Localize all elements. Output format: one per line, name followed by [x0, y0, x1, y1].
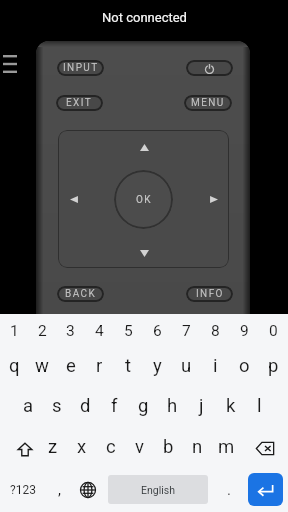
button[interactable]: EXIT — [56, 95, 103, 111]
button[interactable]: Up — [134, 137, 154, 157]
staticText: w — [35, 355, 49, 377]
staticText: English — [141, 484, 175, 496]
staticText: u — [181, 355, 192, 377]
staticText: m — [218, 436, 235, 458]
button[interactable]: 8 — [201, 314, 230, 347]
button[interactable]: x — [67, 426, 96, 467]
staticText: 6 — [153, 322, 162, 340]
staticText: a — [23, 395, 34, 417]
button[interactable]: n — [183, 426, 212, 467]
button[interactable]: BACK — [57, 286, 104, 302]
staticText: . — [227, 481, 231, 499]
button[interactable]: d — [71, 385, 100, 426]
staticText: 1 — [10, 322, 19, 340]
button[interactable]: Right — [203, 189, 223, 209]
button[interactable]: MENU — [184, 95, 232, 111]
button[interactable]: English — [108, 475, 208, 504]
button[interactable]: o — [230, 347, 259, 385]
staticText: ?123 — [10, 483, 36, 497]
staticText: i — [213, 355, 218, 377]
button[interactable]: Shift — [0, 426, 39, 467]
button[interactable]: Menu — [0, 51, 20, 77]
staticText: j — [199, 395, 204, 417]
button[interactable]: . — [213, 467, 245, 512]
button[interactable]: INPUT — [57, 60, 104, 76]
staticText: EXIT — [66, 97, 93, 109]
staticText: x — [77, 436, 87, 458]
staticText: l — [257, 395, 262, 417]
staticText: 3 — [66, 322, 75, 340]
staticText: y — [153, 355, 162, 377]
button[interactable]: h — [158, 385, 187, 426]
button[interactable]: i — [201, 347, 230, 385]
staticText: n — [192, 436, 203, 458]
button[interactable]: g — [129, 385, 158, 426]
staticText: 7 — [182, 322, 191, 340]
staticText: MENU — [191, 97, 225, 109]
staticText: d — [80, 395, 91, 417]
button[interactable]: Left — [64, 189, 84, 209]
button[interactable]: 7 — [172, 314, 201, 347]
staticText: z — [48, 436, 58, 458]
staticText: v — [135, 436, 144, 458]
staticText: 2 — [38, 322, 47, 340]
button[interactable]: a — [14, 385, 42, 426]
button[interactable]: ?123 — [0, 467, 46, 512]
button[interactable]: Backspace — [241, 426, 288, 467]
button[interactable]: Power — [186, 60, 233, 76]
button[interactable]: OK — [114, 170, 173, 229]
button[interactable]: 1 — [0, 314, 28, 347]
staticText: f — [111, 395, 118, 417]
button[interactable]: m — [212, 426, 241, 467]
staticText: 5 — [124, 322, 133, 340]
staticText: INPUT — [63, 62, 99, 74]
button[interactable]: 9 — [230, 314, 259, 347]
button[interactable]: 0 — [259, 314, 288, 347]
staticText: s — [52, 395, 62, 417]
button[interactable]: u — [172, 347, 201, 385]
button[interactable]: , — [46, 467, 73, 512]
button[interactable]: INFO — [186, 286, 233, 302]
button[interactable]: s — [42, 385, 71, 426]
staticText: INFO — [196, 288, 224, 300]
button[interactable]: c — [96, 426, 125, 467]
button[interactable]: p — [259, 347, 288, 385]
button[interactable]: v — [125, 426, 154, 467]
staticText: p — [268, 355, 279, 377]
button[interactable]: f — [100, 385, 129, 426]
button[interactable]: w — [28, 347, 56, 385]
staticText: BACK — [65, 288, 97, 300]
staticText: c — [106, 436, 116, 458]
staticText: g — [138, 395, 149, 417]
staticText: t — [125, 355, 132, 377]
staticText: 4 — [95, 322, 104, 340]
staticText: k — [226, 395, 236, 417]
button[interactable]: 5 — [114, 314, 143, 347]
staticText: 9 — [240, 322, 249, 340]
staticText: b — [163, 436, 174, 458]
button[interactable]: Down — [134, 243, 154, 263]
button[interactable]: 3 — [56, 314, 85, 347]
button[interactable]: Enter — [248, 473, 283, 506]
button[interactable]: 2 — [28, 314, 56, 347]
button[interactable]: b — [154, 426, 183, 467]
button[interactable]: q — [0, 347, 28, 385]
button[interactable]: z — [39, 426, 67, 467]
button[interactable]: l — [245, 385, 274, 426]
button[interactable]: 6 — [143, 314, 172, 347]
button[interactable]: j — [187, 385, 216, 426]
staticText: r — [96, 355, 103, 377]
staticText: OK — [136, 194, 152, 206]
button[interactable]: 4 — [85, 314, 114, 347]
button[interactable]: Language — [73, 467, 103, 512]
button[interactable]: t — [114, 347, 143, 385]
staticText: , — [58, 481, 61, 499]
staticText: 0 — [269, 322, 278, 340]
button[interactable]: k — [216, 385, 245, 426]
button[interactable]: r — [85, 347, 114, 385]
staticText: 8 — [211, 322, 220, 340]
button[interactable]: y — [143, 347, 172, 385]
button[interactable]: e — [56, 347, 85, 385]
staticText: o — [239, 355, 250, 377]
staticText: e — [66, 355, 76, 377]
